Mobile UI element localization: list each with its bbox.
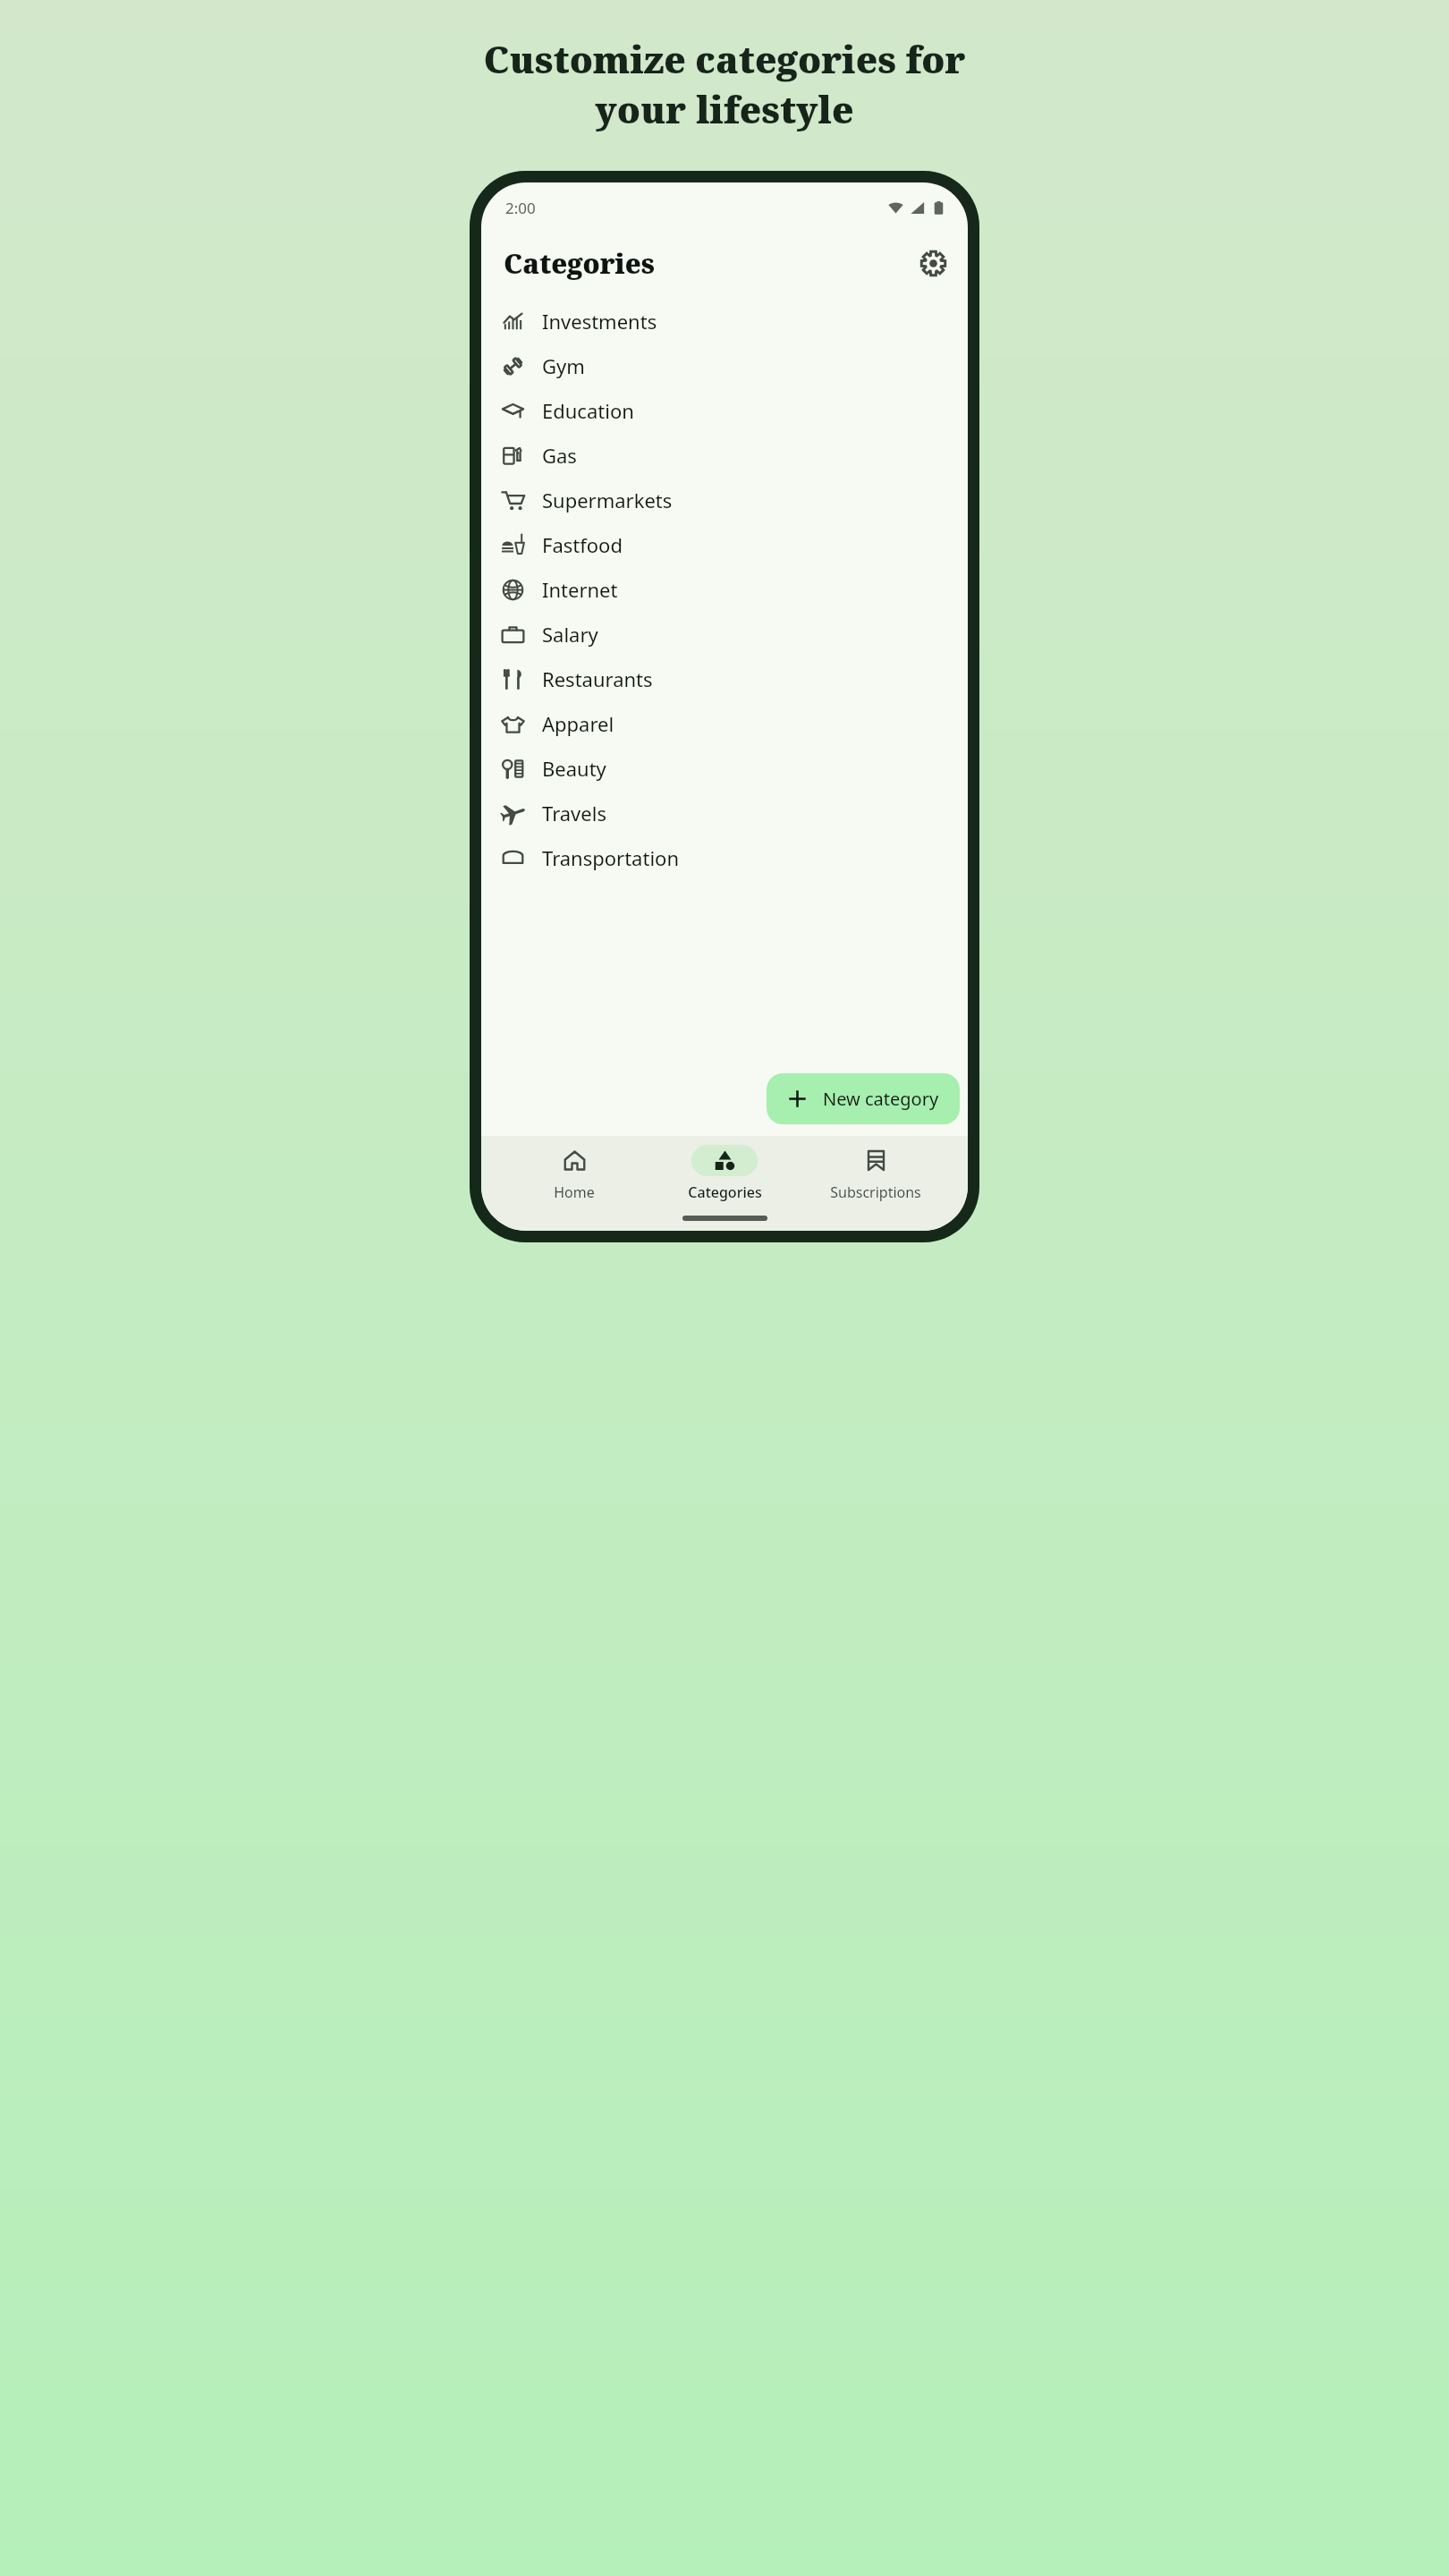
staticText: Categories: [688, 1182, 762, 1202]
staticText: Subscriptions: [830, 1182, 921, 1202]
button[interactable]: Categories: [666, 1145, 783, 1202]
staticText: Apparel: [542, 710, 614, 737]
button[interactable]: Supermarkets: [481, 478, 968, 522]
staticText: 2:00: [505, 198, 536, 218]
staticText: Investments: [542, 308, 657, 335]
button[interactable]: Settings: [913, 243, 953, 283]
button[interactable]: Investments: [481, 299, 968, 343]
button[interactable]: Gas: [481, 433, 968, 478]
button[interactable]: Apparel: [481, 701, 968, 746]
staticText: Education: [542, 397, 634, 424]
staticText: Travels: [542, 800, 606, 826]
button[interactable]: Travels: [481, 791, 968, 835]
staticText: Fastfood: [542, 531, 623, 558]
button[interactable]: Transportation: [481, 835, 968, 880]
staticText: your lifestyle: [595, 84, 854, 134]
staticText: Gas: [542, 442, 577, 469]
staticText: Home: [554, 1182, 595, 1202]
button[interactable]: Internet: [481, 567, 968, 612]
staticText: Internet: [542, 576, 618, 603]
staticText: Gym: [542, 352, 585, 379]
staticText: Beauty: [542, 755, 606, 782]
staticText: New category: [823, 1087, 939, 1111]
button[interactable]: Fastfood: [481, 522, 968, 567]
staticText: Customize categories for: [483, 34, 966, 84]
staticText: Salary: [542, 621, 598, 648]
button[interactable]: Gym: [481, 343, 968, 388]
button[interactable]: Home: [516, 1145, 632, 1202]
button[interactable]: New category: [767, 1073, 960, 1124]
button[interactable]: Beauty: [481, 746, 968, 791]
button[interactable]: Subscriptions: [818, 1145, 934, 1202]
staticText: Transportation: [542, 844, 679, 871]
button[interactable]: Education: [481, 388, 968, 433]
button[interactable]: Restaurants: [481, 657, 968, 701]
button[interactable]: Salary: [481, 612, 968, 657]
staticText: Categories: [504, 245, 655, 282]
staticText: Supermarkets: [542, 487, 673, 513]
staticText: Restaurants: [542, 665, 653, 692]
